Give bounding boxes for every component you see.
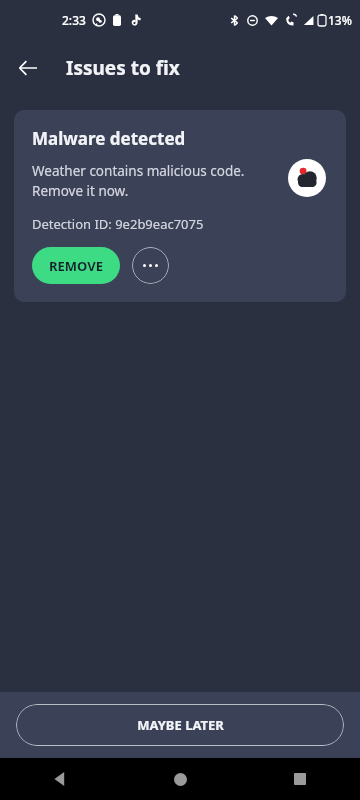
staticText: Detection ID: 9e2b9eac7075 — [32, 215, 204, 233]
staticText: Issues to fix — [66, 55, 180, 81]
button[interactable]: Back — [0, 758, 120, 800]
staticText: Malware detected — [32, 127, 186, 150]
staticText: Weather contains malicious code. — [32, 162, 245, 180]
staticText: Remove it now. — [32, 182, 129, 200]
button[interactable]: REMOVE — [32, 247, 120, 284]
staticText: MAYBE LATER — [137, 716, 224, 734]
staticText: REMOVE — [49, 257, 103, 275]
staticText: 13% — [328, 12, 352, 28]
button[interactable]: Home — [120, 758, 240, 800]
button[interactable]: MAYBE LATER — [16, 704, 344, 746]
staticText: 2:33 — [62, 12, 86, 28]
button[interactable]: More options — [132, 247, 169, 284]
button[interactable]: Back — [8, 48, 48, 88]
button[interactable]: Recent apps — [240, 758, 360, 800]
